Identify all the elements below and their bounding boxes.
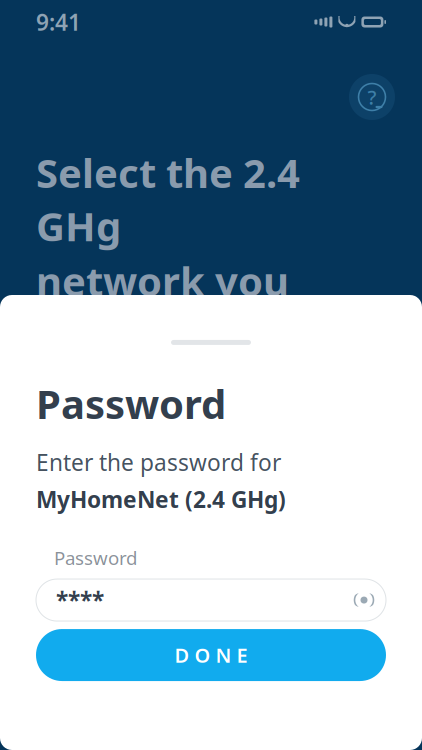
- staticText: MyHomeNet (2.4 GHg): [36, 484, 286, 514]
- staticText: Select the 2.4 GHg: [36, 146, 300, 252]
- staticText: ?: [367, 84, 376, 110]
- staticText: ****: [56, 585, 104, 615]
- staticText: Password: [54, 545, 137, 570]
- button[interactable]: Help: [349, 74, 395, 120]
- staticText: network you want: [36, 254, 289, 360]
- staticText: Password: [36, 377, 226, 430]
- staticText: Enter the password for: [36, 447, 281, 477]
- staticText: to expand: [36, 362, 234, 416]
- staticText: D O N E: [174, 642, 247, 668]
- staticText: 9:41: [36, 7, 81, 37]
- button[interactable]: Show password: [342, 579, 386, 621]
- button[interactable]: D O N E: [36, 629, 386, 681]
